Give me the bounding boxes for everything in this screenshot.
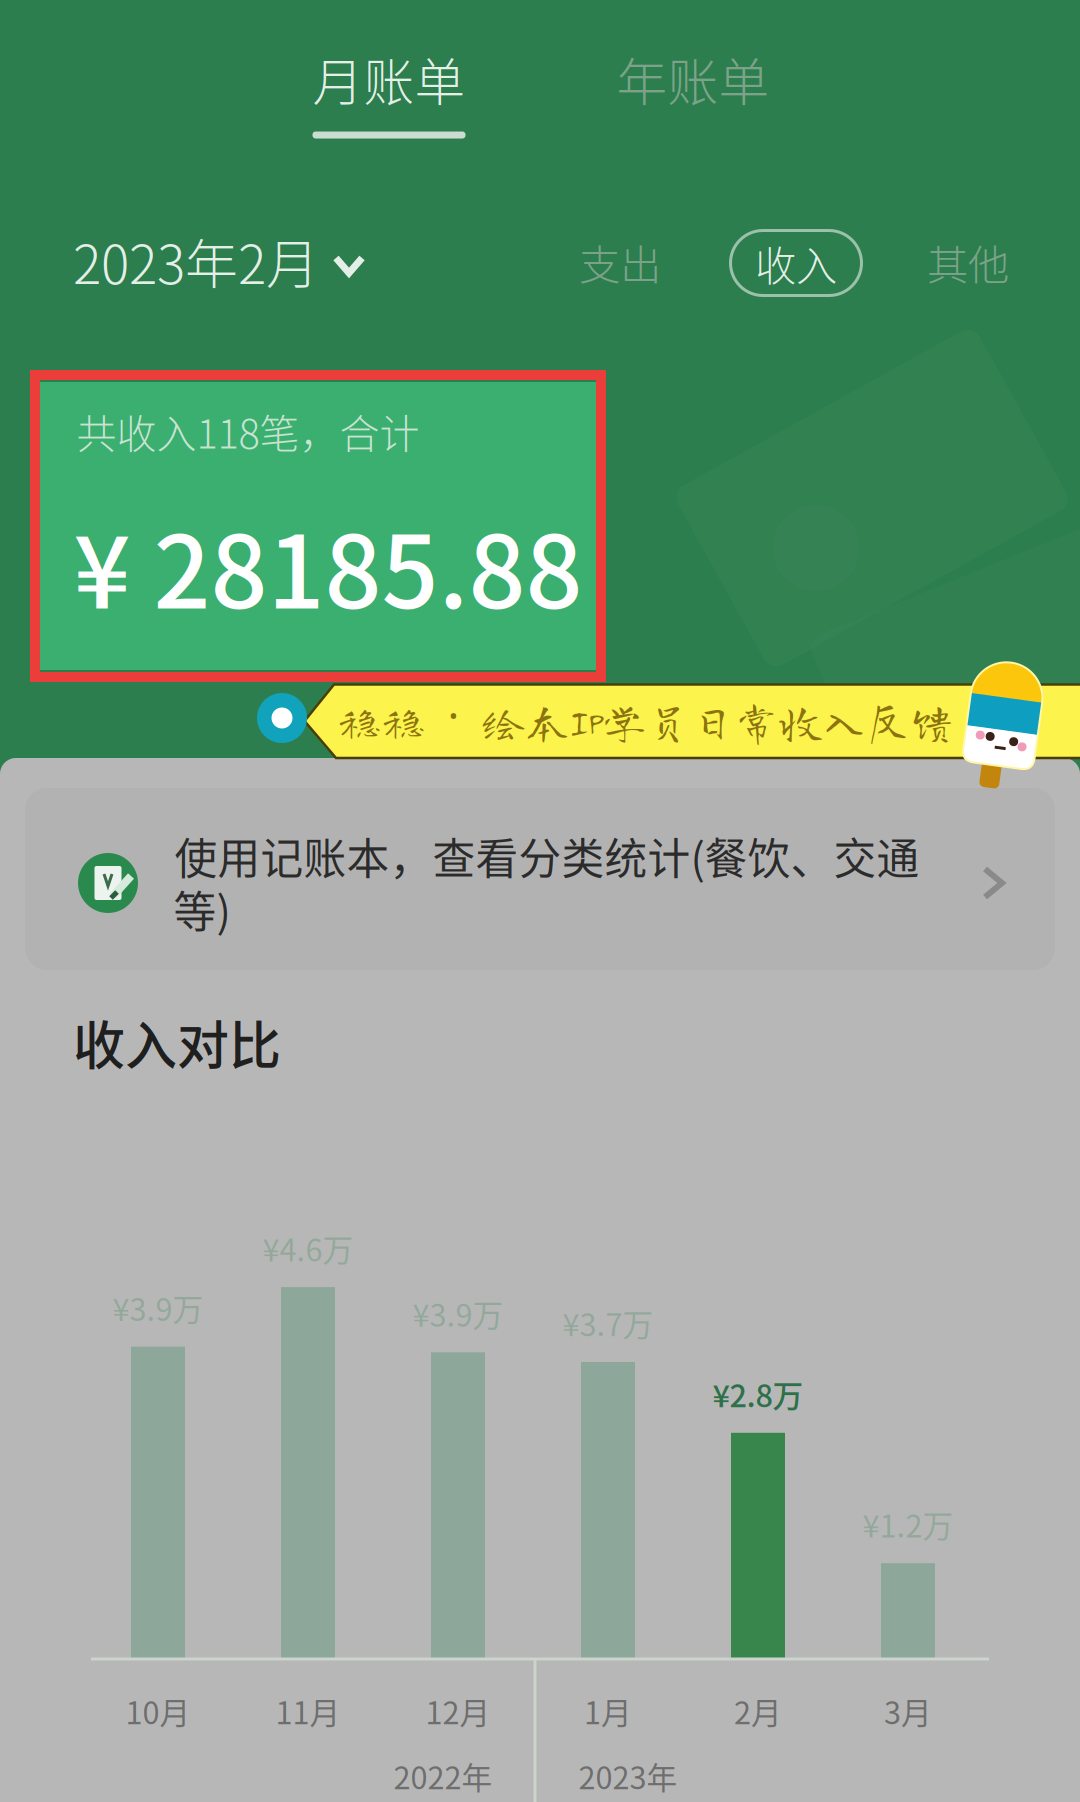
staticText: 2023年 <box>578 1754 677 1798</box>
staticText: 共收入118笔，合计 <box>76 402 419 460</box>
button[interactable]: 使用记账本，查看分类统计(餐饮、交通 <box>25 788 1055 970</box>
staticText: ¥3.9万 <box>412 1291 503 1335</box>
staticText: 支出 <box>579 232 661 292</box>
staticText: 月账单 <box>312 42 465 116</box>
button[interactable]: 年账单 <box>588 23 798 135</box>
staticText: ¥ 28185.88 <box>73 493 582 637</box>
staticText: ¥1.2万 <box>862 1502 953 1546</box>
staticText: ¥3.7万 <box>562 1301 653 1345</box>
staticText: 等) <box>173 878 230 940</box>
staticText: 2022年 <box>393 1754 492 1798</box>
button[interactable]: 月账单 <box>284 23 494 135</box>
staticText: 年账单 <box>616 42 769 116</box>
staticText: 11月 <box>275 1689 340 1733</box>
button[interactable]: 支出 <box>560 219 680 305</box>
staticText: 收入 <box>755 233 837 293</box>
staticText: 1月 <box>584 1689 632 1733</box>
staticText: 12月 <box>425 1689 490 1733</box>
staticText: ¥3.9万 <box>112 1285 203 1330</box>
button[interactable]: 收入 <box>730 230 861 295</box>
staticText: 收入对比 <box>73 1004 281 1080</box>
button[interactable]: 其他 <box>908 219 1028 305</box>
staticText: 2023年2月 <box>73 223 319 299</box>
button[interactable]: 2023年2月 <box>75 216 415 312</box>
staticText: ¥2.8万 <box>712 1372 803 1416</box>
staticText: 3月 <box>884 1689 932 1733</box>
staticText: 2月 <box>734 1689 782 1733</box>
staticText: 其他 <box>927 232 1009 292</box>
staticText: 稳稳 · 绘本IP学员日常收入反馈 <box>337 685 954 745</box>
staticText: 使用记账本，查看分类统计(餐饮、交通 <box>174 825 919 887</box>
staticText: ¥4.6万 <box>262 1226 353 1270</box>
staticText: 10月 <box>125 1689 190 1733</box>
